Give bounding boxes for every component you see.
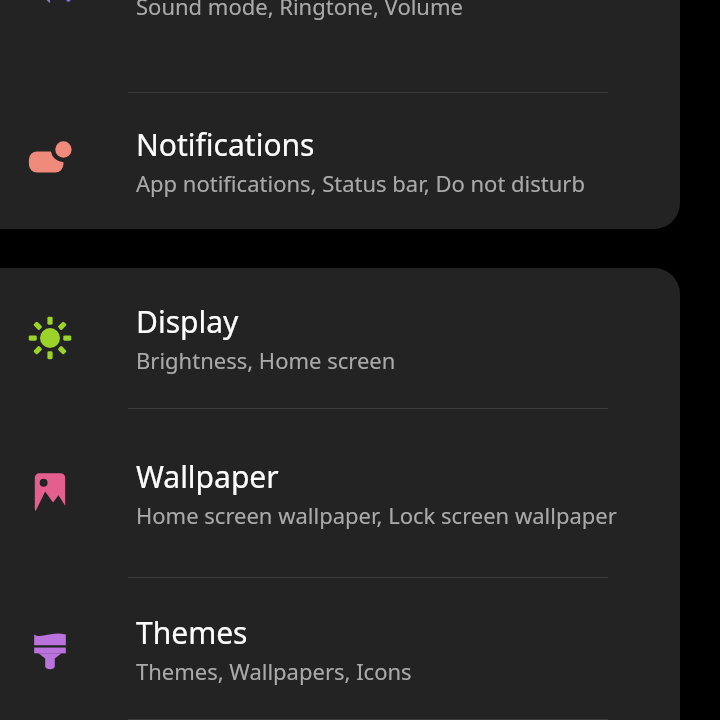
staticText: Display: [136, 301, 239, 342]
button[interactable]: Themes: [0, 578, 680, 719]
button[interactable]: Sounds and Vibration: [0, 0, 680, 92]
button[interactable]: Display: [0, 268, 680, 408]
staticText: Themes, Wallpapers, Icons: [136, 656, 412, 686]
button[interactable]: Wallpaper: [0, 409, 680, 577]
staticText: Brightness, Home screen: [136, 345, 396, 375]
staticText: Sound mode, Ringtone, Volume: [136, 0, 463, 21]
staticText: App notifications, Status bar, Do not di…: [136, 168, 585, 198]
staticText: Notifications: [136, 124, 315, 165]
staticText: Themes: [136, 612, 248, 653]
staticText: Home screen wallpaper, Lock screen wallp…: [136, 500, 617, 530]
button[interactable]: Notifications: [0, 93, 680, 229]
staticText: Wallpaper: [136, 456, 279, 497]
